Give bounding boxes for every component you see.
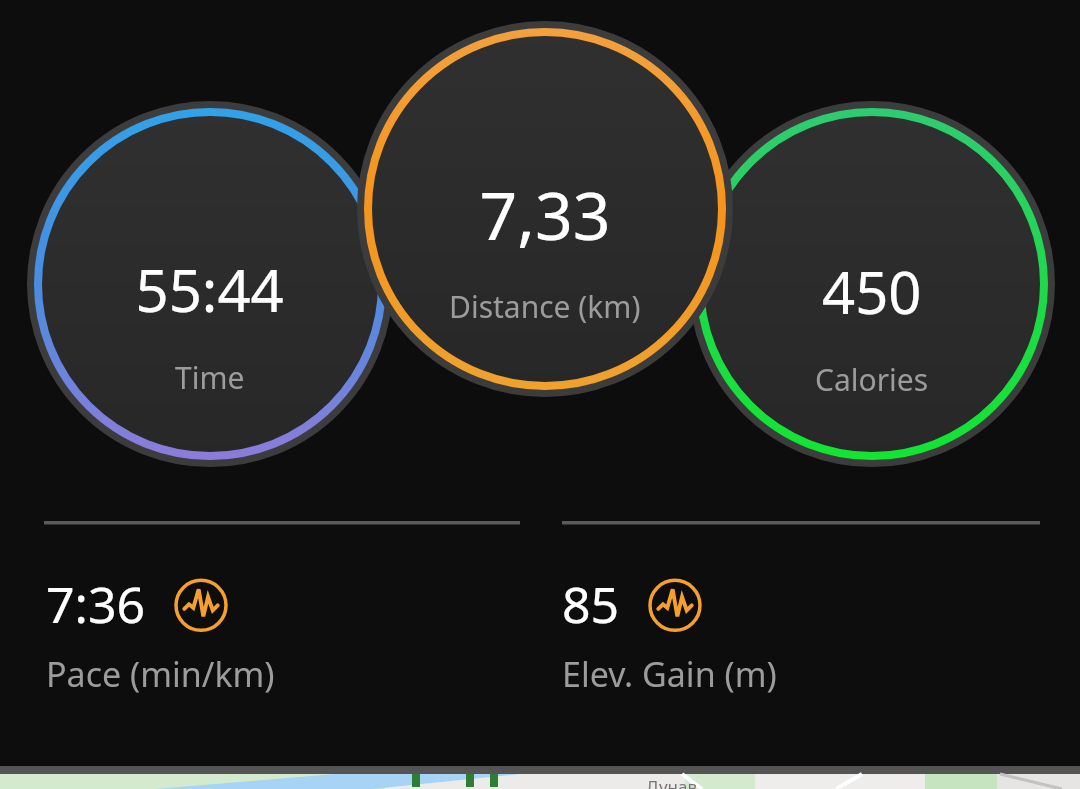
button[interactable]: Elevation gain 85 m: [562, 545, 1040, 705]
button[interactable]: Distance 7,33 km: [362, 26, 728, 392]
button[interactable]: Calories 450: [694, 106, 1050, 462]
button[interactable]: Pace 7:36 min per km: [44, 545, 520, 705]
button[interactable]: Route map: [0, 766, 1080, 789]
button[interactable]: Time 55:44: [32, 106, 388, 462]
